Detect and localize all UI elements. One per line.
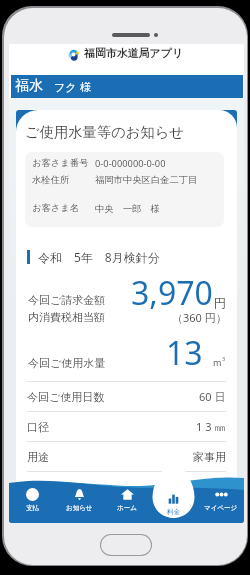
- staticText: 水栓住所: [32, 174, 95, 186]
- staticText: 家事用: [193, 450, 226, 464]
- button[interactable]: Notifications: [56, 475, 103, 523]
- staticText: ホーム: [117, 504, 137, 512]
- staticText: 支払: [26, 504, 39, 512]
- staticText: 今回ご使用水量: [28, 356, 106, 370]
- staticText: フク: [54, 80, 77, 94]
- staticText: 円: [214, 295, 226, 310]
- staticText: 口径: [27, 420, 196, 434]
- staticText: 福水: [15, 77, 43, 95]
- staticText: 今回ご使用日数: [27, 390, 199, 404]
- staticText: 13: [166, 331, 203, 375]
- staticText: お客さま名: [32, 202, 95, 214]
- staticText: 福岡市水道局アプリ: [84, 47, 183, 61]
- button[interactable]: Charges: [150, 475, 197, 523]
- staticText: 3,970: [131, 271, 213, 315]
- staticText: 60 日: [199, 389, 226, 404]
- staticText: 0-0-000000-0-00: [95, 157, 166, 170]
- staticText: 用途: [27, 450, 193, 464]
- staticText: 今回ご請求金額: [28, 293, 106, 307]
- staticText: （360 円）: [172, 310, 227, 325]
- button[interactable]: Home: [103, 475, 150, 523]
- staticText: 料金: [167, 508, 180, 516]
- staticText: 3: [222, 355, 226, 362]
- staticText: 様: [80, 80, 91, 94]
- staticText: m: [213, 356, 222, 368]
- staticText: 令和 5年 8月検針分: [38, 249, 160, 265]
- staticText: 1 3 ㎜: [196, 419, 226, 434]
- staticText: 内消費税相当額: [28, 310, 105, 324]
- staticText: ご使用水量等のお知らせ: [25, 123, 184, 141]
- button[interactable]: My page: [197, 475, 244, 523]
- button[interactable]: Payments: [9, 475, 56, 523]
- staticText: マイページ: [204, 504, 238, 512]
- staticText: 中央 一郎 様: [95, 202, 161, 215]
- staticText: お客さま番号: [32, 157, 95, 169]
- staticText: お知らせ: [66, 504, 93, 512]
- staticText: 福岡市中央区白金二丁目: [95, 174, 198, 186]
